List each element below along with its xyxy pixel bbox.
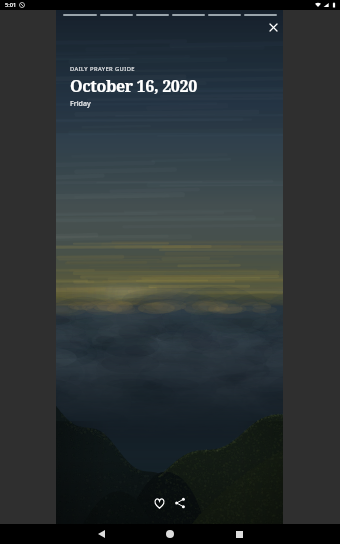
button[interactable]: Close	[263, 17, 283, 37]
button[interactable]: Like	[149, 493, 169, 513]
staticText: October 16, 2020	[70, 75, 197, 97]
button[interactable]: Home	[161, 525, 179, 543]
staticText: DAILY PRAYER GUIDE	[70, 65, 135, 73]
staticText: 5:01	[5, 1, 17, 9]
button[interactable]: Back	[92, 525, 110, 543]
button[interactable]: Share	[170, 493, 190, 513]
staticText: Friday	[70, 99, 91, 109]
button[interactable]: Recents	[230, 525, 248, 543]
